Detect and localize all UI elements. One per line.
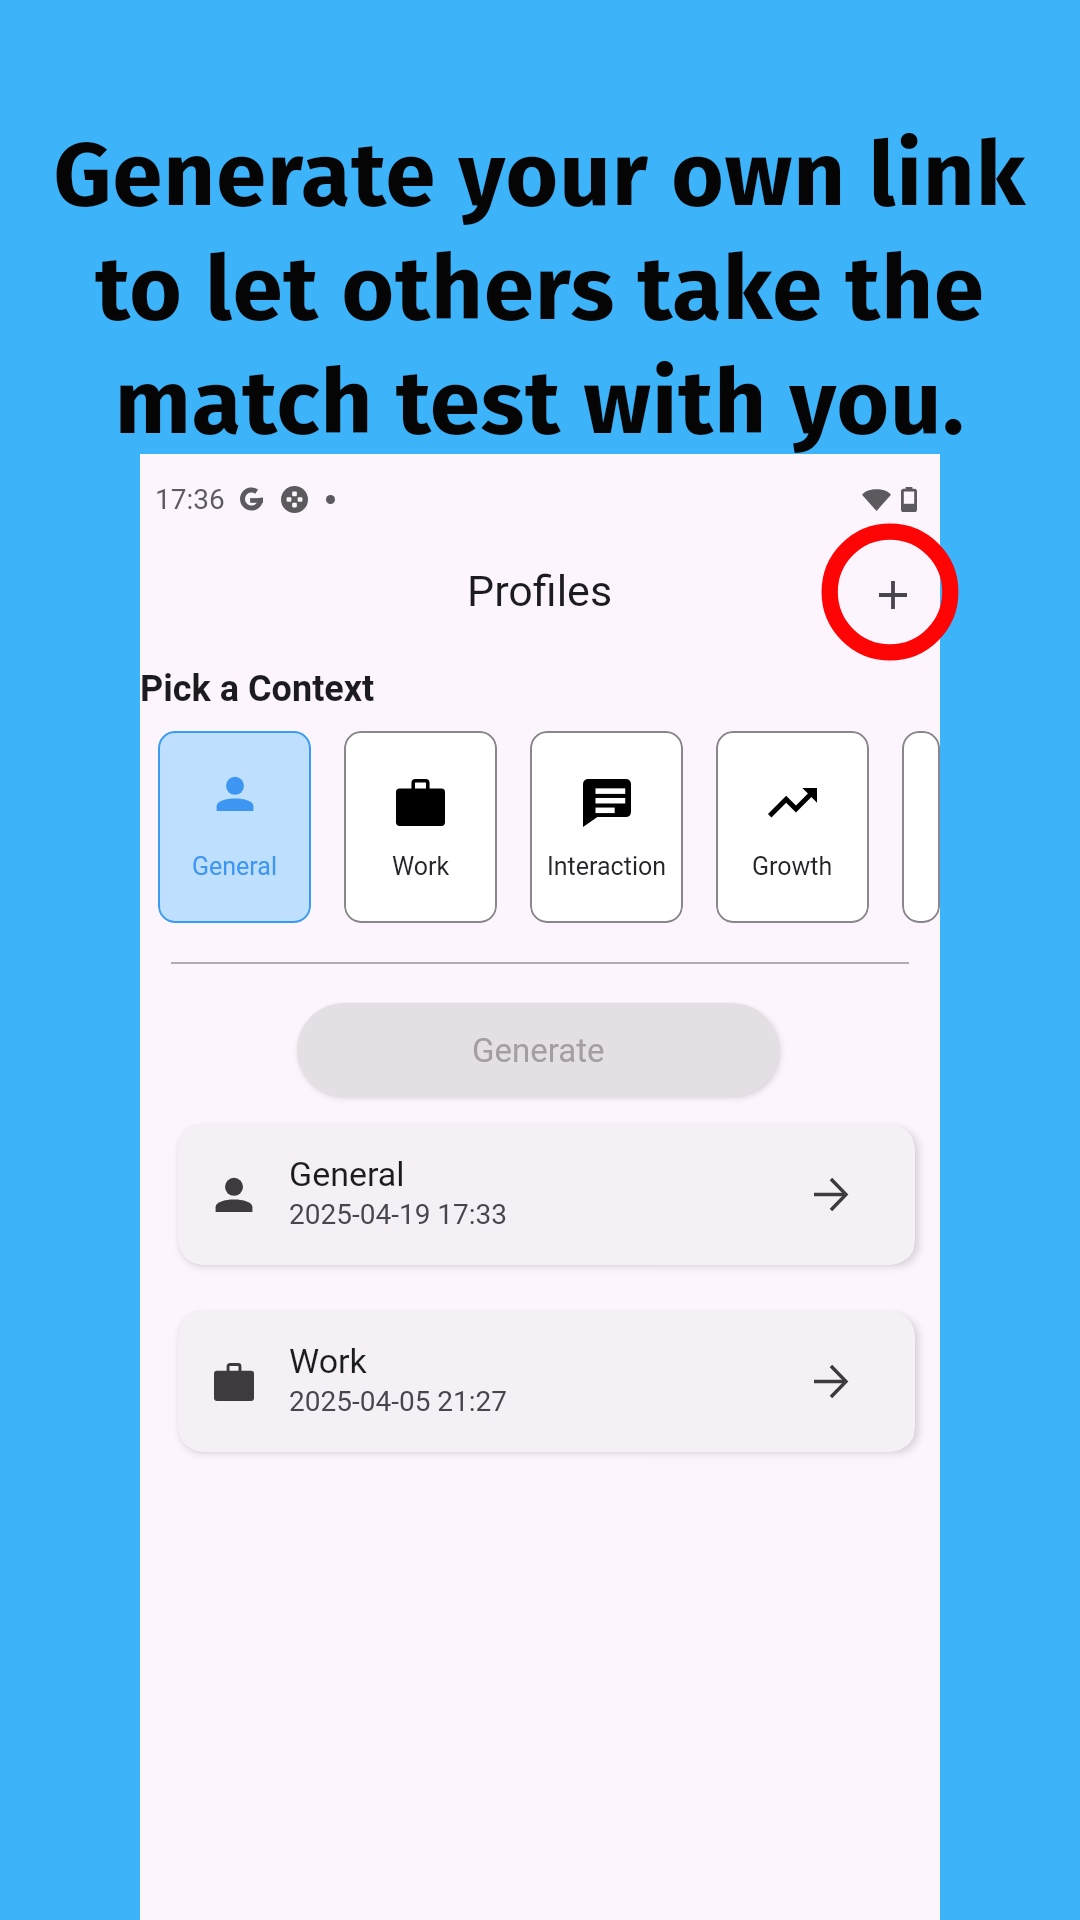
staticText: Pick a Context: [140, 668, 375, 710]
staticText: Growth: [752, 852, 833, 881]
button[interactable]: Generate: [297, 1003, 779, 1097]
button[interactable]: Work: [178, 1311, 915, 1452]
staticText: 2025-04-19 17:33: [289, 1198, 508, 1231]
staticText: Generate your own link to let others tak…: [22, 121, 1058, 457]
staticText: 17:36: [155, 483, 225, 516]
staticText: Work: [392, 852, 450, 881]
staticText: Generate: [472, 1031, 605, 1070]
button[interactable]: General: [158, 731, 311, 923]
staticText: Work: [289, 1341, 367, 1381]
staticText: General: [289, 1154, 405, 1194]
button[interactable]: General: [178, 1124, 915, 1265]
staticText: Interaction: [547, 852, 667, 881]
button[interactable]: More contexts: [902, 731, 940, 923]
staticText: General: [192, 852, 278, 881]
staticText: Profiles: [467, 566, 613, 616]
button[interactable]: Growth: [716, 731, 869, 923]
button[interactable]: Interaction: [530, 731, 683, 923]
button[interactable]: Add profile: [845, 547, 941, 643]
button[interactable]: Work: [344, 731, 497, 923]
staticText: 2025-04-05 21:27: [289, 1385, 508, 1418]
